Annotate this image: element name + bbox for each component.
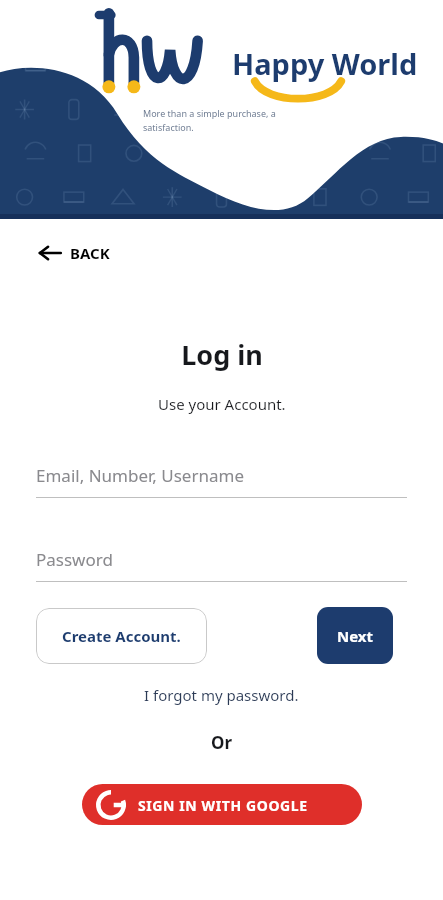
button[interactable]: Next — [317, 607, 393, 664]
staticText: BACK — [70, 243, 110, 263]
staticText: Next — [337, 626, 374, 646]
button[interactable]: BACK — [28, 235, 120, 271]
staticText: More than a simple purchase, a — [143, 107, 276, 119]
staticText: I forgot my password. — [144, 685, 299, 705]
staticText: Happy World — [232, 44, 418, 83]
staticText: Use your Account. — [158, 394, 286, 414]
staticText: Password — [36, 548, 113, 571]
button[interactable]: Create Account. — [36, 608, 207, 664]
staticText: Or — [211, 731, 233, 754]
staticText: Log in — [181, 336, 263, 373]
staticText: SIGN IN WITH GOOGLE — [138, 796, 308, 815]
staticText: satisfaction. — [143, 121, 194, 133]
staticText: Create Account. — [62, 626, 181, 646]
staticText: Email, Number, Username — [36, 464, 244, 487]
button[interactable]: I forgot my password. — [136, 681, 307, 709]
button[interactable]: SIGN IN WITH GOOGLE — [82, 784, 362, 825]
